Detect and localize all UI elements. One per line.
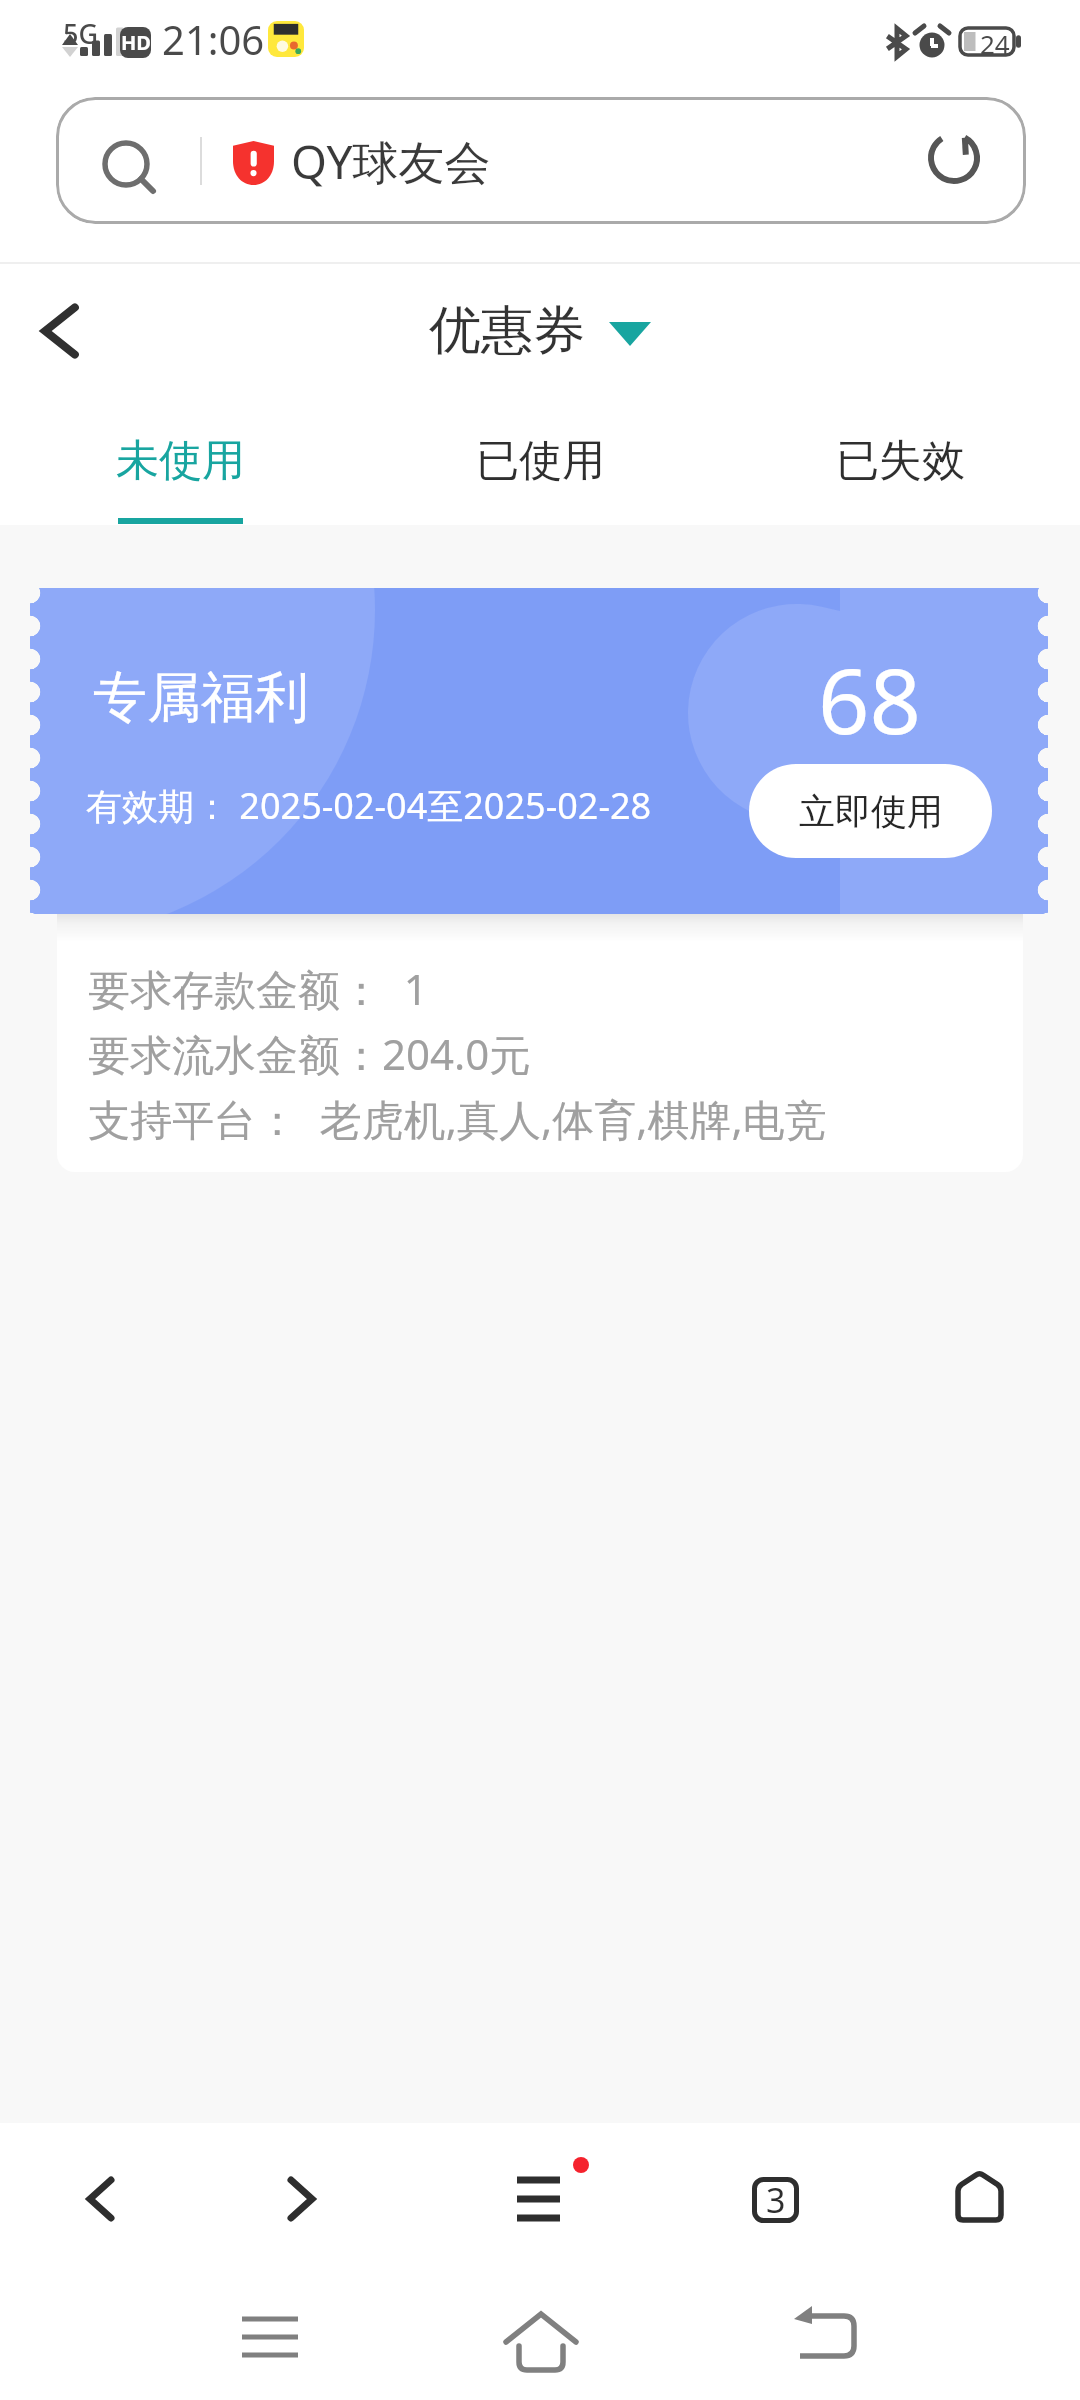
button[interactable]: Back — [12, 283, 108, 379]
button[interactable]: Back — [772, 2286, 882, 2382]
staticText: 21:06 — [162, 12, 265, 66]
other: Refresh — [928, 130, 980, 182]
staticText: 3 — [766, 2177, 786, 2223]
button[interactable]: 已使用 — [360, 398, 720, 525]
staticText: 5G — [63, 15, 99, 52]
button[interactable]: Home — [481, 2284, 601, 2384]
staticText: 24 — [980, 26, 1010, 57]
staticText: 支持平台： 老虎机,真人,体育,棋牌,电竞 — [88, 1090, 827, 1147]
button[interactable]: Forward — [262, 2163, 350, 2251]
staticText: 已失效 — [836, 434, 965, 488]
button[interactable]: 优惠券 — [429, 298, 651, 364]
staticText: QY球友会 — [291, 130, 491, 193]
staticText: 要求流水金额：204.0元 — [88, 1025, 532, 1082]
staticText: 优惠券 — [429, 298, 585, 364]
staticText: 未使用 — [116, 434, 245, 488]
staticText: HD — [121, 29, 151, 56]
button[interactable]: Recents — [212, 2287, 328, 2385]
staticText: 有效期： 2025-02-04至2025-02-28 — [86, 781, 652, 830]
button[interactable]: 未使用 — [0, 398, 360, 525]
staticText: 要求存款金额： 1 — [88, 960, 428, 1017]
staticText: 专属福利 — [93, 664, 309, 732]
button[interactable]: QY球友会 — [56, 97, 1026, 224]
button[interactable]: 已失效 — [720, 398, 1080, 525]
button[interactable]: Home — [935, 2151, 1023, 2239]
staticText: 已使用 — [476, 434, 605, 488]
staticText: 立即使用 — [799, 789, 943, 834]
button[interactable]: 立即使用 — [749, 764, 992, 858]
button[interactable]: Menu — [497, 2163, 585, 2251]
button[interactable]: Back — [61, 2163, 149, 2251]
staticText: 68 — [818, 638, 921, 761]
button[interactable]: Tabs — [731, 2155, 819, 2243]
